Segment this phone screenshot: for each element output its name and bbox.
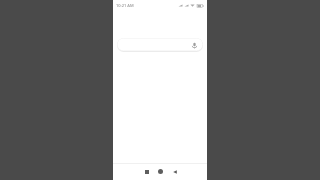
button[interactable]: Back: [168, 165, 181, 178]
button[interactable]: Recent apps: [140, 165, 153, 178]
button[interactable]: Voice search: [117, 38, 203, 51]
button[interactable]: Voice search: [190, 41, 198, 49]
button[interactable]: Home: [154, 165, 167, 178]
staticText: 10:21 AM: [116, 3, 134, 8]
